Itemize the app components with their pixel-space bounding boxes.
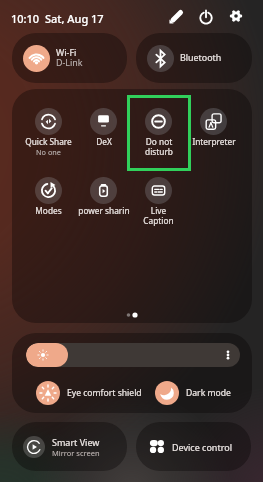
staticText: Wi-Fi: [56, 46, 77, 58]
button[interactable]: Settings: [225, 5, 247, 27]
staticText: Do not disturb: [145, 136, 173, 157]
button[interactable]: Interpreter: [186, 101, 241, 158]
button[interactable]: DeX: [76, 101, 131, 158]
button[interactable]: Wi-Fi: [12, 33, 127, 83]
button[interactable]: Eye comfort shield: [36, 380, 142, 406]
staticText: D-Link: [56, 56, 83, 68]
staticText: Live Caption: [143, 205, 174, 226]
staticText: DeX: [96, 136, 112, 147]
staticText: Quick Share: [25, 136, 72, 147]
staticText: Device control: [172, 441, 232, 453]
staticText: No one: [36, 147, 61, 157]
staticText: Eye comfort shield: [67, 387, 142, 399]
button[interactable]: Live Caption: [131, 170, 186, 227]
staticText: Modes: [35, 205, 62, 216]
button[interactable]: [26, 343, 240, 367]
button[interactable]: power sharing: [76, 170, 131, 227]
button[interactable]: Device control: [136, 422, 251, 471]
button[interactable]: Modes: [21, 170, 76, 227]
staticText: Smart View: [52, 436, 100, 448]
staticText: Dark mode: [186, 387, 231, 399]
button[interactable]: Smart View: [12, 422, 127, 471]
button[interactable]: Edit: [165, 6, 187, 28]
staticText: power sharing: [78, 205, 130, 216]
staticText: Mirror screen: [52, 448, 100, 458]
button[interactable]: Dark mode: [155, 380, 231, 406]
button[interactable]: Power: [195, 6, 217, 28]
staticText: Interpreter: [192, 136, 236, 147]
staticText: 10:10 Sat, Aug 17: [11, 11, 104, 26]
button[interactable]: Do not disturb: [131, 101, 186, 158]
button[interactable]: Bluetooth: [136, 33, 252, 83]
staticText: Bluetooth: [180, 51, 222, 63]
button[interactable]: Quick Share: [21, 101, 76, 158]
